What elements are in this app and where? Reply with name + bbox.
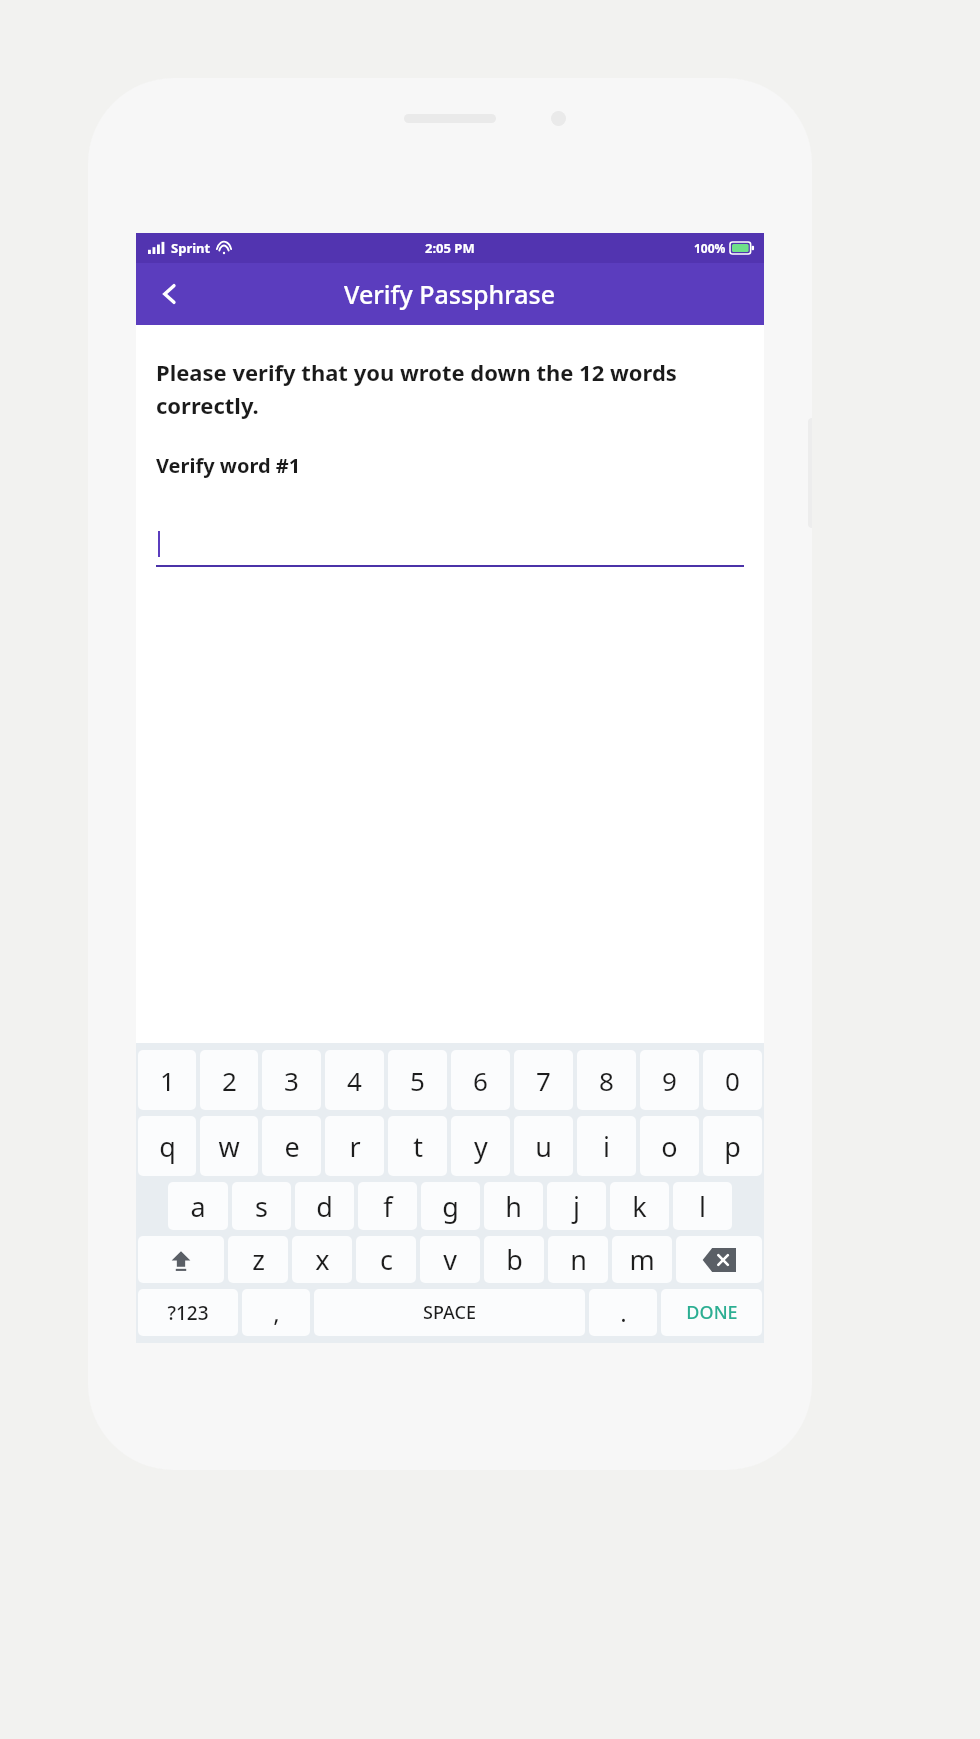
staticText: 2:05 PM <box>425 239 475 257</box>
staticText: 9 <box>662 1063 677 1098</box>
button[interactable]: u <box>514 1116 573 1176</box>
button[interactable]: 8 <box>577 1050 636 1110</box>
staticText: Sprint <box>171 239 211 257</box>
button[interactable]: Backspace <box>676 1236 762 1283</box>
button[interactable]: 5 <box>388 1050 447 1110</box>
button[interactable]: f <box>358 1182 417 1230</box>
staticText: k <box>632 1188 647 1225</box>
button[interactable]: d <box>295 1182 354 1230</box>
staticText: z <box>252 1241 265 1278</box>
button[interactable]: r <box>325 1116 384 1176</box>
staticText: t <box>413 1128 423 1165</box>
button[interactable]: i <box>577 1116 636 1176</box>
staticText: 100% <box>694 240 726 256</box>
button[interactable]: b <box>484 1236 544 1283</box>
staticText: a <box>190 1188 206 1225</box>
button[interactable]: p <box>703 1116 762 1176</box>
staticText: b <box>506 1241 523 1278</box>
button[interactable]: 1 <box>138 1050 196 1110</box>
staticText: r <box>349 1128 361 1165</box>
button[interactable]: w <box>200 1116 258 1176</box>
button[interactable]: , <box>242 1289 310 1336</box>
staticText: . <box>620 1296 627 1329</box>
staticText: Please verify that you wrote down the 12… <box>156 357 744 420</box>
staticText: i <box>603 1128 610 1165</box>
button[interactable]: l <box>673 1182 732 1230</box>
staticText: ?123 <box>167 1300 209 1326</box>
staticText: DONE <box>686 1300 738 1325</box>
button[interactable]: DONE <box>661 1289 762 1336</box>
button[interactable]: e <box>262 1116 321 1176</box>
staticText: 3 <box>284 1063 299 1098</box>
staticText: 2 <box>222 1063 237 1098</box>
staticText: , <box>273 1296 280 1329</box>
staticText: u <box>535 1128 552 1165</box>
button[interactable]: n <box>548 1236 608 1283</box>
staticText: 0 <box>725 1063 740 1098</box>
staticText: SPACE <box>423 1300 476 1325</box>
button[interactable]: h <box>484 1182 543 1230</box>
button[interactable]: c <box>356 1236 416 1283</box>
button[interactable]: ?123 <box>138 1289 238 1336</box>
button[interactable]: m <box>612 1236 672 1283</box>
staticText: f <box>383 1188 393 1225</box>
button[interactable]: k <box>610 1182 669 1230</box>
button[interactable]: . <box>589 1289 657 1336</box>
button[interactable]: a <box>168 1182 228 1230</box>
button[interactable]: v <box>420 1236 480 1283</box>
staticText: Verify Passphrase <box>344 277 556 311</box>
button[interactable]: o <box>640 1116 699 1176</box>
staticText: 8 <box>599 1063 614 1098</box>
staticText: 1 <box>160 1063 175 1098</box>
staticText: c <box>380 1241 393 1278</box>
button[interactable]: 3 <box>262 1050 321 1110</box>
button[interactable]: s <box>232 1182 291 1230</box>
button[interactable]: q <box>138 1116 196 1176</box>
staticText: 4 <box>347 1063 362 1098</box>
button[interactable]: 9 <box>640 1050 699 1110</box>
button[interactable]: t <box>388 1116 447 1176</box>
staticText: w <box>218 1128 240 1165</box>
staticText: Verify word #1 <box>156 452 301 479</box>
staticText: s <box>255 1188 268 1225</box>
staticText: 6 <box>473 1063 488 1098</box>
staticText: n <box>570 1241 587 1278</box>
staticText: x <box>315 1241 330 1278</box>
staticText: o <box>661 1128 678 1165</box>
button[interactable]: 0 <box>703 1050 762 1110</box>
staticText: h <box>505 1188 522 1225</box>
staticText: p <box>724 1128 741 1165</box>
staticText: 5 <box>410 1063 425 1098</box>
button[interactable]: y <box>451 1116 510 1176</box>
button[interactable]: j <box>547 1182 606 1230</box>
button[interactable]: Back <box>144 268 196 320</box>
staticText: d <box>316 1188 333 1225</box>
button[interactable]: SPACE <box>314 1289 585 1336</box>
staticText: v <box>443 1241 457 1278</box>
button[interactable] <box>156 521 744 567</box>
button[interactable]: g <box>421 1182 480 1230</box>
button[interactable]: x <box>292 1236 352 1283</box>
staticText: j <box>573 1188 580 1225</box>
button[interactable]: Shift <box>138 1236 224 1283</box>
button[interactable]: z <box>228 1236 288 1283</box>
button[interactable]: 4 <box>325 1050 384 1110</box>
staticText: 7 <box>536 1063 551 1098</box>
staticText: y <box>474 1128 488 1165</box>
button[interactable]: 2 <box>200 1050 258 1110</box>
staticText: e <box>284 1128 300 1165</box>
staticText: g <box>442 1188 459 1225</box>
staticText: q <box>159 1128 176 1165</box>
button[interactable]: 6 <box>451 1050 510 1110</box>
button[interactable]: 7 <box>514 1050 573 1110</box>
staticText: l <box>699 1188 706 1225</box>
staticText: m <box>629 1241 655 1278</box>
